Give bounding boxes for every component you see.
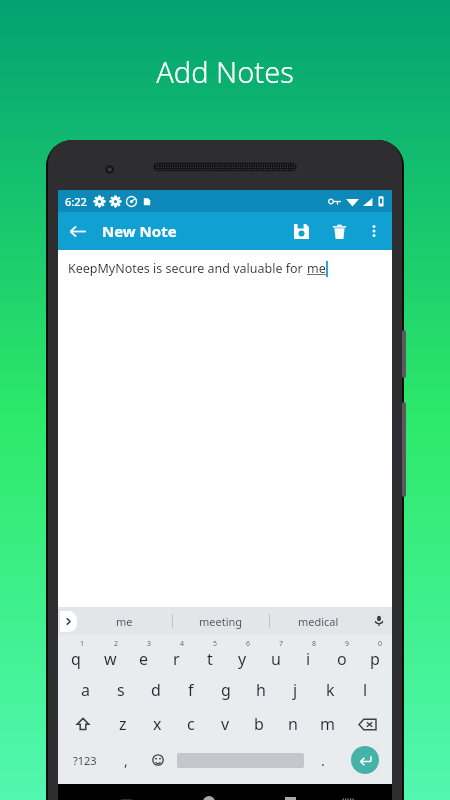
staticText: me xyxy=(116,614,133,629)
staticText: s xyxy=(117,679,125,701)
staticText: 2 xyxy=(114,639,119,649)
button[interactable]: Save xyxy=(282,212,320,250)
button[interactable]: meeting xyxy=(173,607,269,635)
button[interactable]: me xyxy=(77,607,172,635)
staticText: q xyxy=(71,648,81,670)
staticText: New Note xyxy=(102,221,177,241)
button[interactable]: k xyxy=(313,673,348,707)
button[interactable]: d xyxy=(138,673,173,707)
staticText: 1 xyxy=(80,639,85,649)
staticText: a xyxy=(81,679,90,701)
staticText: k xyxy=(326,679,335,701)
button[interactable]: . xyxy=(307,741,339,779)
button[interactable]: g xyxy=(208,673,243,707)
staticText: Add Notes xyxy=(0,52,450,91)
staticText: 3 xyxy=(147,639,152,649)
staticText: w xyxy=(104,648,117,670)
staticText: t xyxy=(207,648,213,670)
staticText: e xyxy=(139,648,149,670)
button[interactable]: z xyxy=(106,707,140,741)
staticText: x xyxy=(153,713,162,735)
button[interactable]: 6 xyxy=(226,639,259,673)
staticText: c xyxy=(187,713,195,735)
staticText: p xyxy=(370,648,380,670)
staticText: 4 xyxy=(180,639,185,649)
staticText: me xyxy=(307,260,326,277)
staticText: z xyxy=(119,713,127,735)
staticText: , xyxy=(124,751,128,770)
staticText: r xyxy=(173,648,180,670)
staticText: medical xyxy=(298,614,339,629)
button[interactable]: 3 xyxy=(127,639,160,673)
button[interactable]: h xyxy=(243,673,278,707)
button[interactable]: a xyxy=(67,673,103,707)
button[interactable]: 4 xyxy=(160,639,193,673)
button[interactable]: c xyxy=(174,707,208,741)
button[interactable]: Back xyxy=(58,212,96,250)
button[interactable]: v xyxy=(208,707,242,741)
staticText: ?123 xyxy=(73,753,97,768)
button[interactable]: Backspace xyxy=(344,707,391,741)
staticText: f xyxy=(188,679,194,701)
button[interactable]: Enter xyxy=(351,746,379,774)
button[interactable]: m xyxy=(310,707,344,741)
button[interactable]: x xyxy=(140,707,174,741)
button[interactable]: 5 xyxy=(193,639,226,673)
staticText: . xyxy=(321,751,325,770)
staticText: 8 xyxy=(312,639,317,649)
staticText: j xyxy=(293,679,298,701)
staticText: o xyxy=(337,648,347,670)
staticText: v xyxy=(221,713,230,735)
button[interactable]: Shift xyxy=(59,707,106,741)
staticText: 6:22 xyxy=(65,194,87,209)
staticText: y xyxy=(238,648,247,670)
button[interactable]: Home xyxy=(187,784,230,800)
button[interactable]: s xyxy=(103,673,138,707)
button[interactable]: j xyxy=(278,673,313,707)
button[interactable]: b xyxy=(242,707,276,741)
button[interactable]: f xyxy=(173,673,208,707)
staticText: 0 xyxy=(378,639,383,649)
staticText: g xyxy=(221,679,231,701)
staticText: 9 xyxy=(345,639,350,649)
button[interactable]: medical xyxy=(270,607,366,635)
staticText: 5 xyxy=(213,639,218,649)
staticText: d xyxy=(151,679,161,701)
button[interactable]: 2 xyxy=(93,639,127,673)
staticText: 6 xyxy=(246,639,251,649)
staticText: meeting xyxy=(199,614,243,629)
staticText: u xyxy=(271,648,281,670)
button[interactable]: Voice input xyxy=(366,607,392,635)
button[interactable]: 1 xyxy=(59,639,93,673)
staticText: b xyxy=(254,713,264,735)
staticText: m xyxy=(320,713,335,735)
button[interactable]: Back xyxy=(105,784,148,800)
staticText: KeepMyNotes is secure and valuable for xyxy=(68,260,307,277)
button[interactable]: Emoji xyxy=(142,741,174,779)
button[interactable]: Expand xyxy=(60,611,77,632)
button[interactable]: , xyxy=(110,741,142,779)
button[interactable]: 7 xyxy=(259,639,292,673)
button[interactable]: 0 xyxy=(358,639,391,673)
button[interactable]: 9 xyxy=(325,639,358,673)
button[interactable]: l xyxy=(348,673,383,707)
staticText: i xyxy=(306,648,311,670)
button[interactable]: n xyxy=(276,707,310,741)
button[interactable]: Recent apps xyxy=(269,784,312,800)
button[interactable]: 8 xyxy=(292,639,325,673)
button[interactable]: More options xyxy=(358,215,390,247)
button[interactable]: ?123 xyxy=(60,741,110,779)
button[interactable]: Switch keyboard xyxy=(327,784,370,800)
staticText: h xyxy=(256,679,266,701)
button[interactable]: Delete xyxy=(320,212,358,250)
staticText: n xyxy=(288,713,298,735)
staticText: 7 xyxy=(279,639,284,649)
staticText: l xyxy=(363,679,368,701)
